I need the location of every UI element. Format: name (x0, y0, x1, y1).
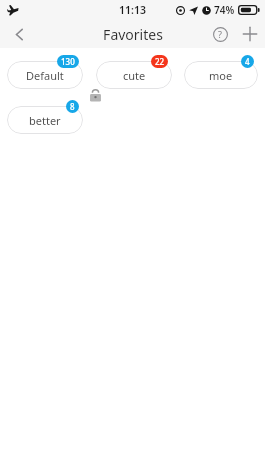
staticText: 4 (245, 56, 250, 67)
button[interactable]: Default (7, 61, 83, 89)
button[interactable]: cute (96, 61, 172, 89)
staticText: 8 (70, 101, 75, 112)
button[interactable]: Back (0, 20, 38, 48)
staticText: 22 (155, 56, 165, 67)
button[interactable]: Help (205, 20, 235, 48)
staticText: 11:13 (119, 3, 146, 17)
button[interactable]: Add (235, 20, 265, 48)
staticText: ? (218, 28, 222, 40)
button[interactable]: moe (184, 61, 258, 89)
staticText: 74% (214, 3, 235, 17)
staticText: Favorites (103, 25, 163, 44)
staticText: moe (209, 68, 233, 83)
staticText: better (29, 113, 61, 128)
staticText: Default (26, 68, 64, 83)
staticText: 130 (61, 56, 75, 67)
staticText: cute (123, 68, 146, 83)
button[interactable]: better (7, 106, 83, 134)
